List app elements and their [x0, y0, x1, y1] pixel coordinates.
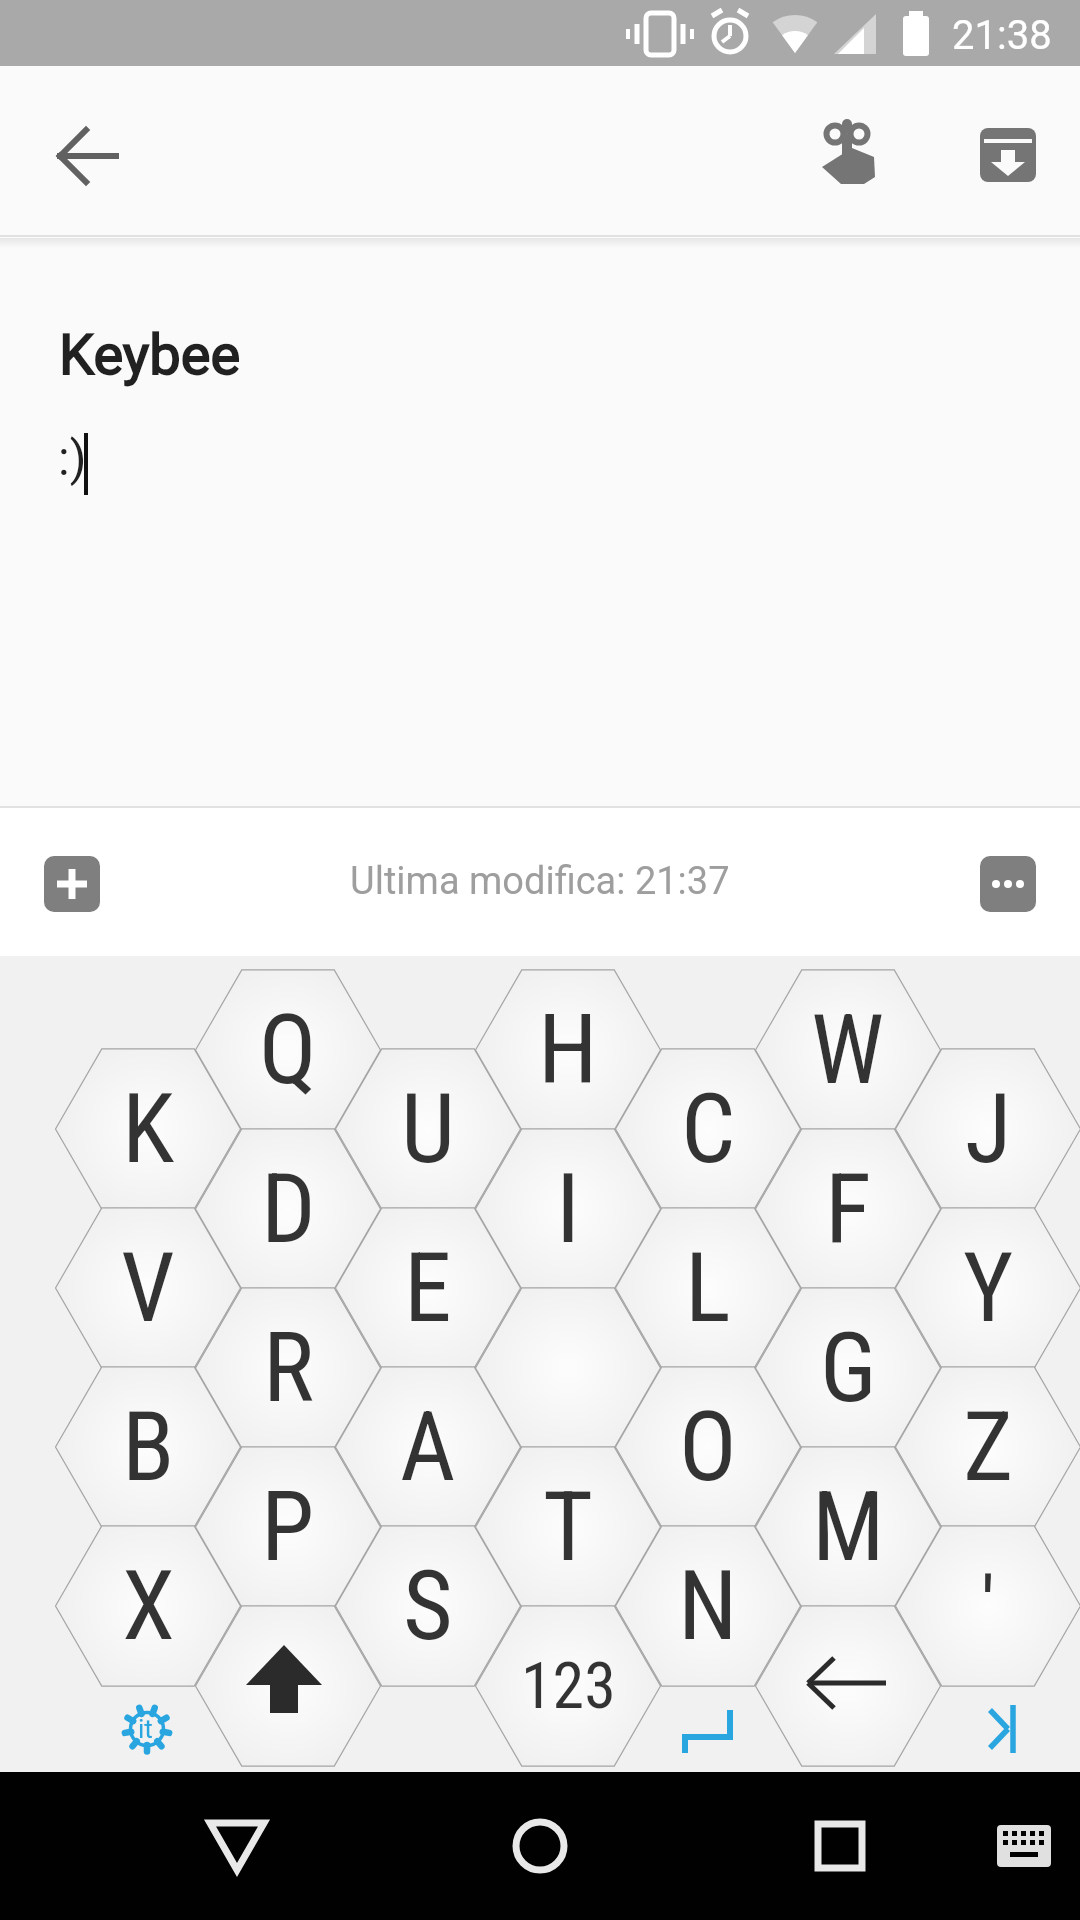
staticText: J: [965, 1073, 1012, 1186]
staticText: A: [400, 1391, 456, 1504]
button[interactable]: [40, 112, 136, 208]
button[interactable]: [959, 106, 1055, 202]
staticText: G: [820, 1312, 877, 1425]
staticText: W: [811, 994, 885, 1107]
staticText: C: [681, 1073, 736, 1186]
staticText: V: [121, 1232, 175, 1345]
button[interactable]: [980, 856, 1036, 912]
button[interactable]: X: [48, 1516, 248, 1696]
staticText: N: [678, 1550, 738, 1663]
button[interactable]: [659, 1681, 755, 1772]
button[interactable]: O: [608, 1357, 808, 1537]
button[interactable]: N: [608, 1516, 808, 1696]
button[interactable]: G: [748, 1278, 948, 1458]
staticText: M: [812, 1471, 885, 1584]
button[interactable]: V: [48, 1198, 248, 1378]
button[interactable]: H: [468, 960, 668, 1140]
button[interactable]: M: [748, 1437, 948, 1617]
staticText: R: [263, 1312, 314, 1425]
button[interactable]: [188, 1596, 388, 1772]
staticText: I: [556, 1153, 580, 1266]
staticText: K: [122, 1073, 175, 1186]
staticText: X: [122, 1550, 175, 1663]
button[interactable]: [187, 1796, 287, 1896]
staticText: :): [58, 430, 87, 486]
button[interactable]: ': [888, 1516, 1080, 1696]
staticText: P: [261, 1471, 315, 1584]
button[interactable]: J: [888, 1039, 1080, 1219]
staticText: 123: [521, 1649, 616, 1724]
staticText: B: [122, 1391, 175, 1504]
staticText: H: [538, 994, 598, 1107]
staticText: U: [401, 1073, 455, 1186]
staticText: L: [685, 1232, 731, 1345]
staticText: T: [543, 1471, 593, 1584]
button[interactable]: B: [48, 1357, 248, 1537]
button[interactable]: I: [468, 1119, 668, 1299]
button[interactable]: S: [328, 1516, 528, 1696]
button[interactable]: [950, 1681, 1046, 1772]
button[interactable]: K: [48, 1039, 248, 1219]
button[interactable]: T: [468, 1437, 668, 1617]
staticText: F: [825, 1153, 872, 1266]
staticText: Y: [963, 1232, 1014, 1345]
staticText: Keybee: [59, 322, 241, 388]
button[interactable]: [99, 1681, 195, 1772]
button[interactable]: [44, 856, 100, 912]
button[interactable]: [790, 1796, 890, 1896]
staticText: D: [261, 1153, 316, 1266]
button[interactable]: C: [608, 1039, 808, 1219]
staticText: E: [404, 1232, 452, 1345]
button[interactable]: [800, 106, 896, 202]
staticText: Ultima modifica: 21:37: [350, 859, 730, 904]
staticText: O: [679, 1391, 737, 1504]
button[interactable]: A: [328, 1357, 528, 1537]
staticText: Z: [963, 1391, 1014, 1504]
button[interactable]: 123: [468, 1596, 668, 1772]
button[interactable]: W: [748, 960, 948, 1140]
button[interactable]: P: [188, 1437, 388, 1617]
button[interactable]: F: [748, 1119, 948, 1299]
button[interactable]: Z: [888, 1357, 1080, 1537]
button[interactable]: E: [328, 1198, 528, 1378]
button[interactable]: L: [608, 1198, 808, 1378]
button[interactable]: U: [328, 1039, 528, 1219]
staticText: 21:38: [952, 12, 1052, 59]
staticText: S: [403, 1550, 453, 1663]
button[interactable]: [974, 1796, 1074, 1896]
staticText: it: [138, 1714, 153, 1744]
button[interactable]: [748, 1596, 948, 1772]
button[interactable]: Y: [888, 1198, 1080, 1378]
button[interactable]: [468, 1278, 668, 1458]
staticText: ': [981, 1559, 995, 1653]
button[interactable]: Q: [188, 960, 388, 1140]
button[interactable]: [490, 1796, 590, 1896]
button[interactable]: D: [188, 1119, 388, 1299]
staticText: Q: [259, 994, 317, 1107]
button[interactable]: R: [188, 1278, 388, 1458]
